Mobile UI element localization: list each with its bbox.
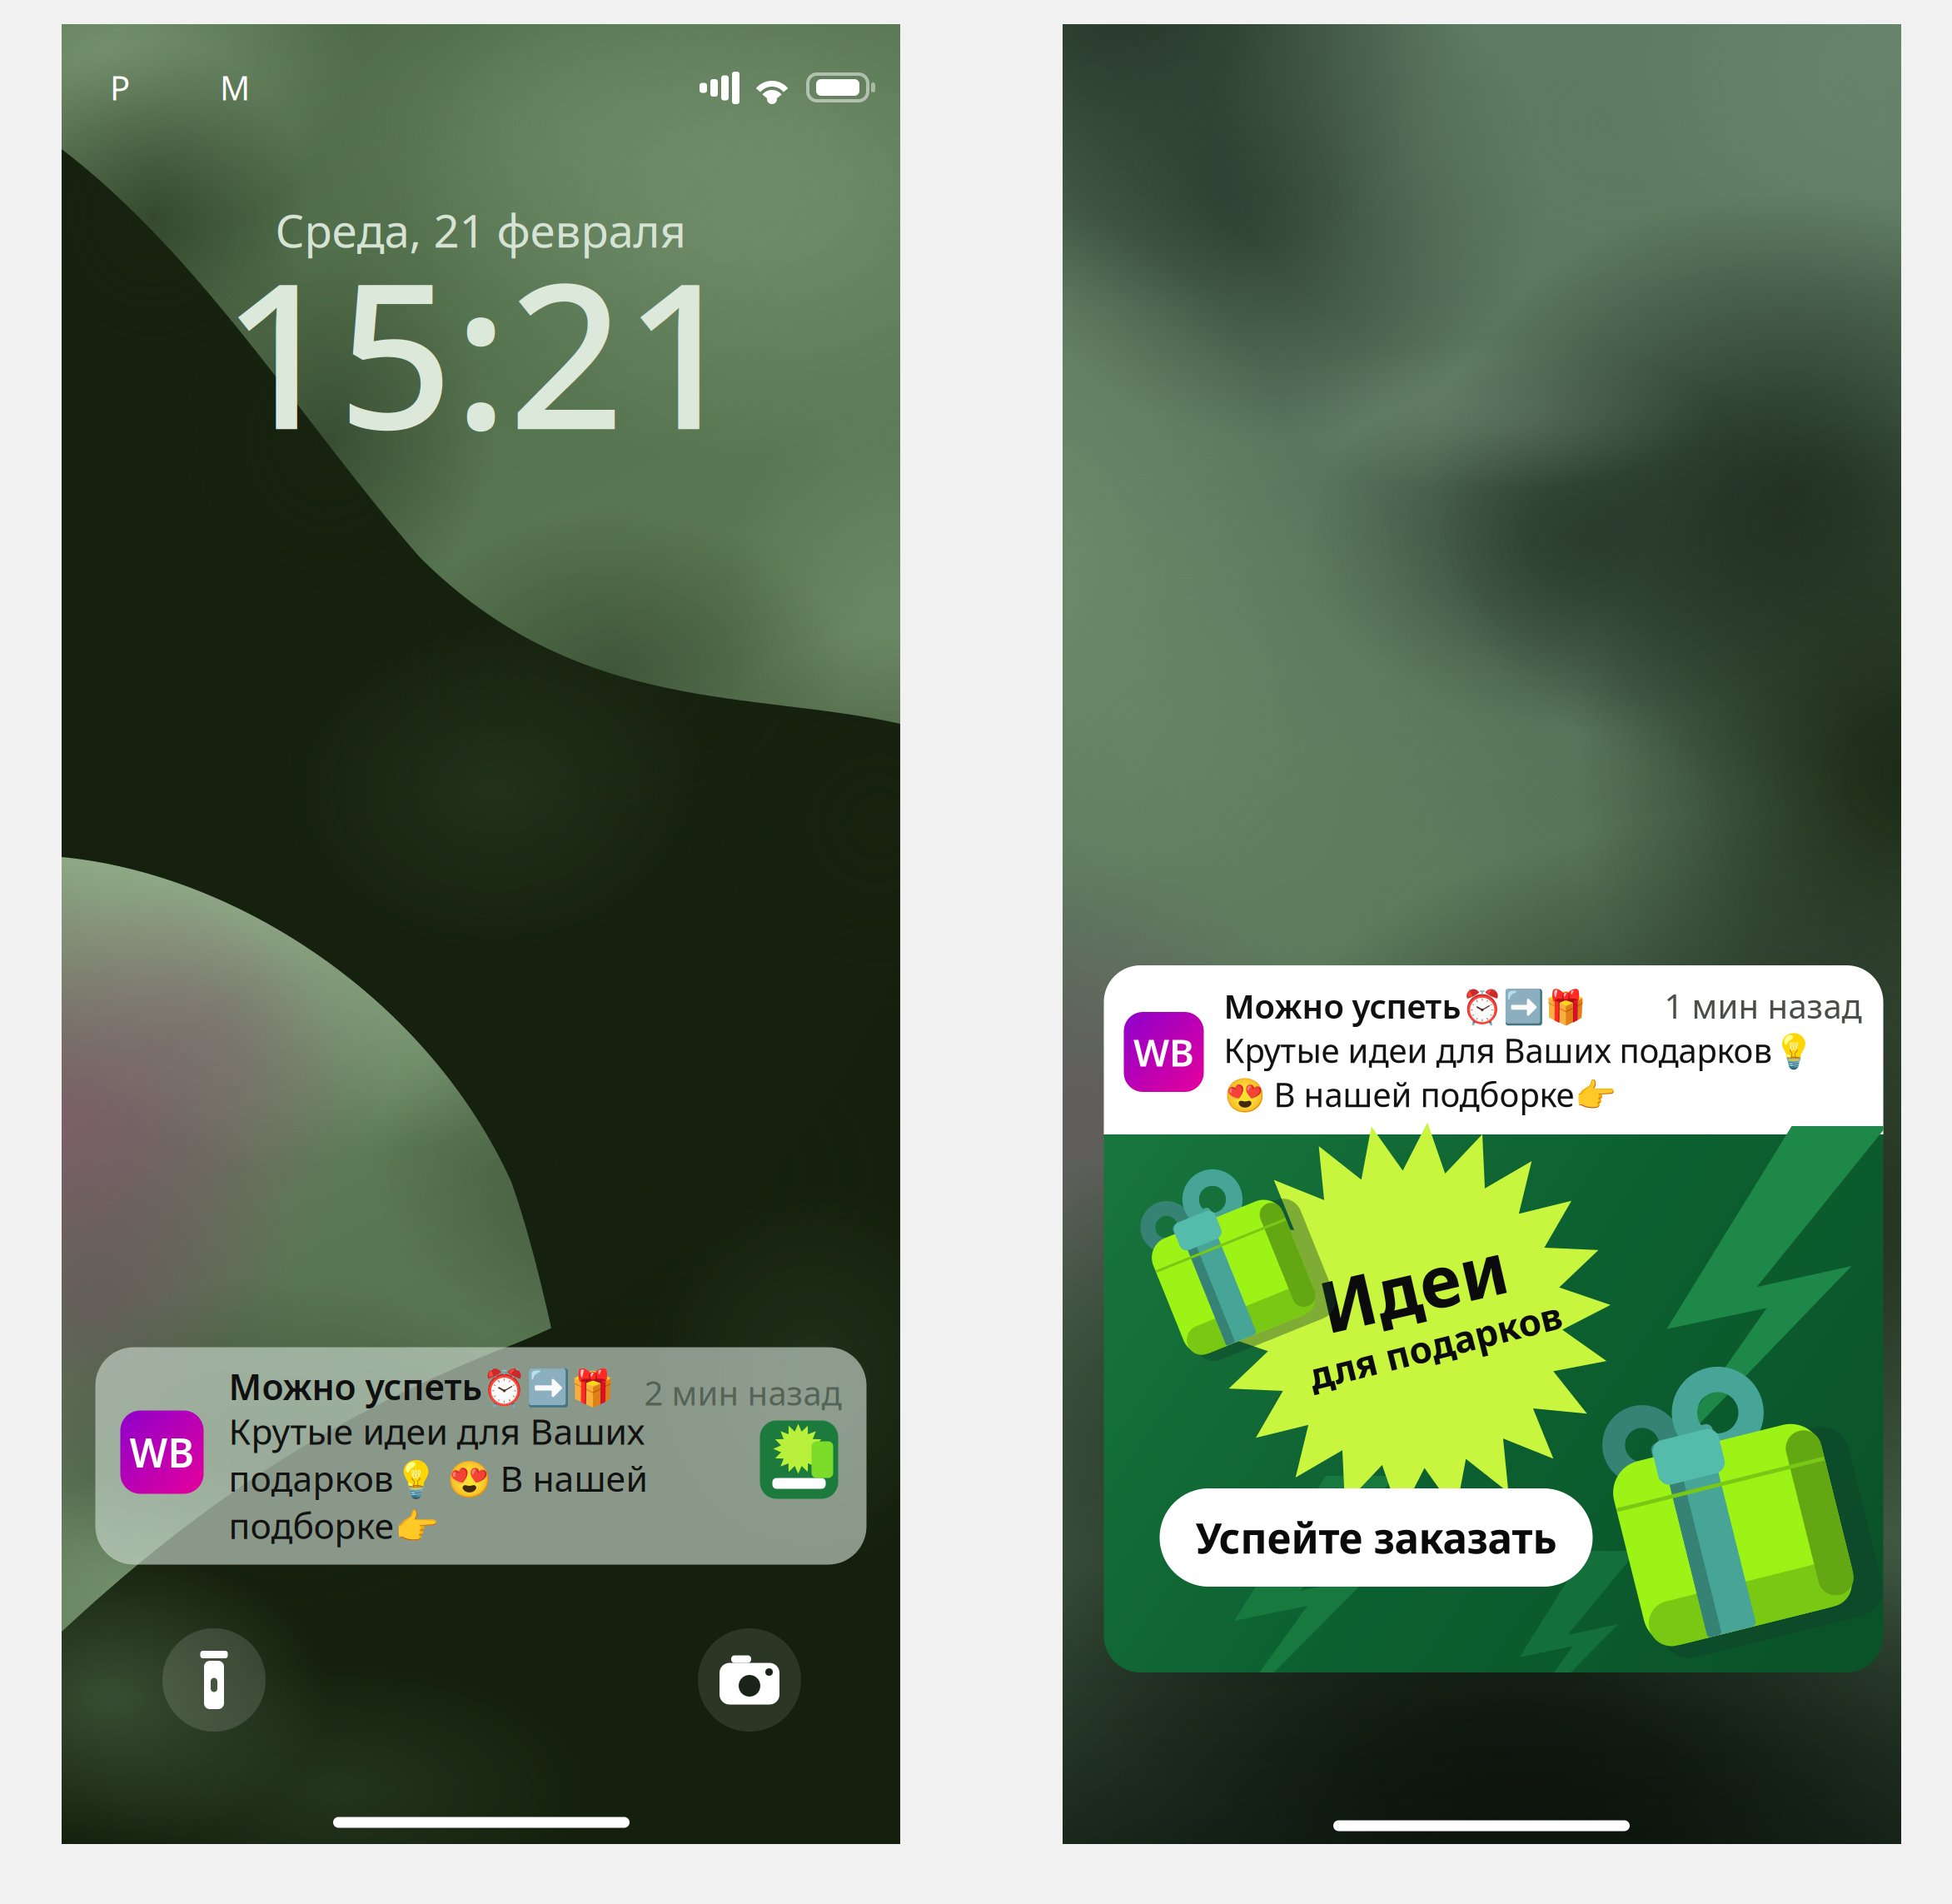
button[interactable]: Camera <box>698 1628 801 1732</box>
staticText: Можно успеть⏰➡️🎁 <box>1224 984 1586 1028</box>
staticText: Крутые идеи для Ваших подарков💡 😍 В наше… <box>1224 1028 1814 1116</box>
button[interactable]: Flashlight <box>162 1628 266 1732</box>
staticText: WB <box>1133 1027 1194 1077</box>
staticText: Среда, 21 февраля <box>275 200 687 260</box>
staticText: Крутые идеи для Ваших подарков💡 😍 В наше… <box>229 1407 647 1549</box>
staticText: для подарков <box>1306 1321 1565 1369</box>
staticText: WB <box>129 1426 194 1479</box>
staticText: Можно успеть⏰➡️🎁 <box>229 1363 614 1410</box>
staticText: Успейте заказать <box>1195 1510 1557 1565</box>
staticText: M <box>220 65 250 110</box>
staticText: 1 мин назад <box>1664 984 1862 1028</box>
button[interactable]: WB <box>1104 965 1883 1672</box>
staticText: 2 мин назад <box>644 1371 842 1415</box>
staticText: 15:21 <box>222 216 740 485</box>
staticText: Идеи <box>1318 1239 1509 1333</box>
staticText: P <box>110 65 130 110</box>
